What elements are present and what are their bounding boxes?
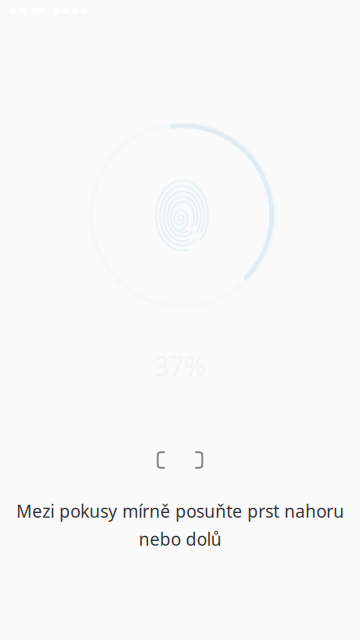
staticText: Mezi pokusy mírně posuňte prst nahoru	[16, 499, 344, 522]
button[interactable]: Snímač otisku prstu	[91, 123, 274, 306]
button[interactable]: Umístění snímače	[156, 451, 203, 469]
staticText: nebo dolů	[138, 527, 221, 550]
